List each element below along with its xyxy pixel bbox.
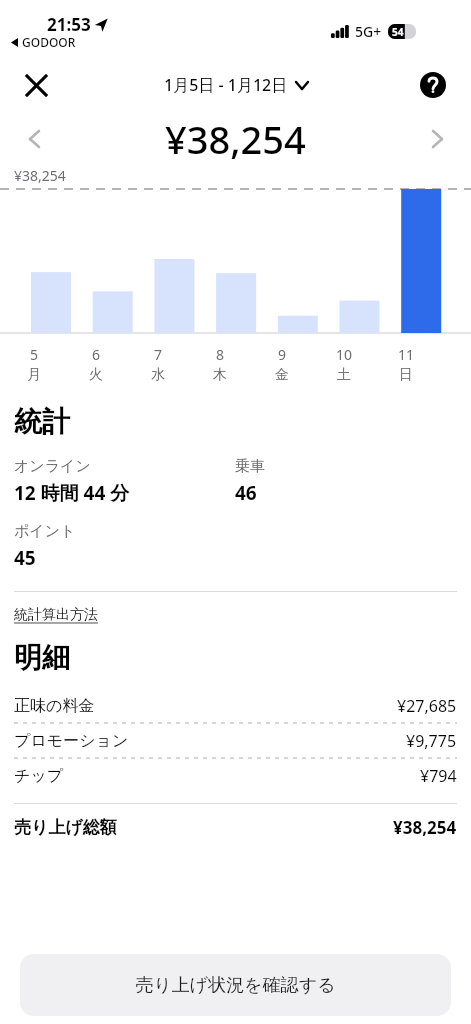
button[interactable]: Close: [14, 63, 58, 107]
staticText: プロモーション: [14, 731, 129, 751]
staticText: 1月5日 - 1月12日: [164, 74, 288, 96]
button[interactable]: 11: [386, 345, 426, 384]
staticText: 9: [278, 345, 287, 364]
staticText: 統計算出方法: [14, 606, 98, 624]
staticText: 乗車: [235, 457, 265, 476]
button[interactable]: Help: [413, 65, 453, 105]
button[interactable]: 7: [138, 345, 178, 384]
staticText: 10: [336, 345, 353, 364]
staticText: ¥27,685: [397, 695, 457, 717]
staticText: 金: [275, 366, 289, 384]
staticText: 46: [235, 480, 257, 506]
button[interactable]: 10: [324, 345, 364, 384]
staticText: 月: [27, 366, 41, 384]
staticText: 54: [392, 25, 404, 39]
staticText: 統計: [14, 404, 70, 439]
staticText: 正味の料金: [14, 696, 95, 716]
button[interactable]: 1月5日 - 1月12日: [164, 74, 308, 96]
staticText: 5: [30, 345, 39, 364]
staticText: 火: [89, 366, 103, 384]
staticText: 45: [14, 545, 36, 571]
staticText: 11: [398, 345, 415, 364]
staticText: ¥794: [420, 765, 457, 787]
button[interactable]: Next week: [417, 119, 457, 159]
staticText: 明細: [14, 640, 70, 675]
button[interactable]: 9: [262, 345, 302, 384]
button[interactable]: 売り上げ状況を確認する: [20, 954, 451, 1016]
staticText: 5G+: [355, 22, 382, 41]
button[interactable]: 8: [200, 345, 240, 384]
staticText: 7: [154, 345, 163, 364]
staticText: 木: [213, 366, 227, 384]
staticText: ¥9,775: [406, 730, 457, 752]
staticText: 6: [92, 345, 101, 364]
staticText: ポイント: [14, 522, 76, 541]
button[interactable]: 売り上げ総額: [14, 816, 457, 839]
staticText: ¥38,254: [14, 166, 66, 185]
button[interactable]: プロモーション: [14, 724, 457, 758]
staticText: 水: [151, 366, 165, 384]
staticText: 土: [337, 366, 351, 384]
button[interactable]: チップ: [14, 759, 457, 793]
button[interactable]: 正味の料金: [14, 689, 457, 723]
button[interactable]: 6: [76, 345, 116, 384]
staticText: チップ: [14, 766, 64, 786]
staticText: ¥38,254: [393, 816, 457, 839]
button[interactable]: Previous week: [14, 119, 54, 159]
staticText: ¥38,254: [165, 113, 306, 165]
staticText: 売り上げ状況を確認する: [135, 974, 336, 997]
button[interactable]: 5: [14, 345, 54, 384]
staticText: オンライン: [14, 457, 91, 476]
staticText: GODOOR: [22, 34, 76, 50]
staticText: 21:53: [47, 13, 91, 36]
staticText: 8: [216, 345, 225, 364]
staticText: 日: [399, 366, 413, 384]
staticText: 売り上げ総額: [14, 817, 117, 838]
staticText: 12 時間 44 分: [14, 480, 130, 506]
button[interactable]: 統計算出方法: [14, 606, 98, 624]
